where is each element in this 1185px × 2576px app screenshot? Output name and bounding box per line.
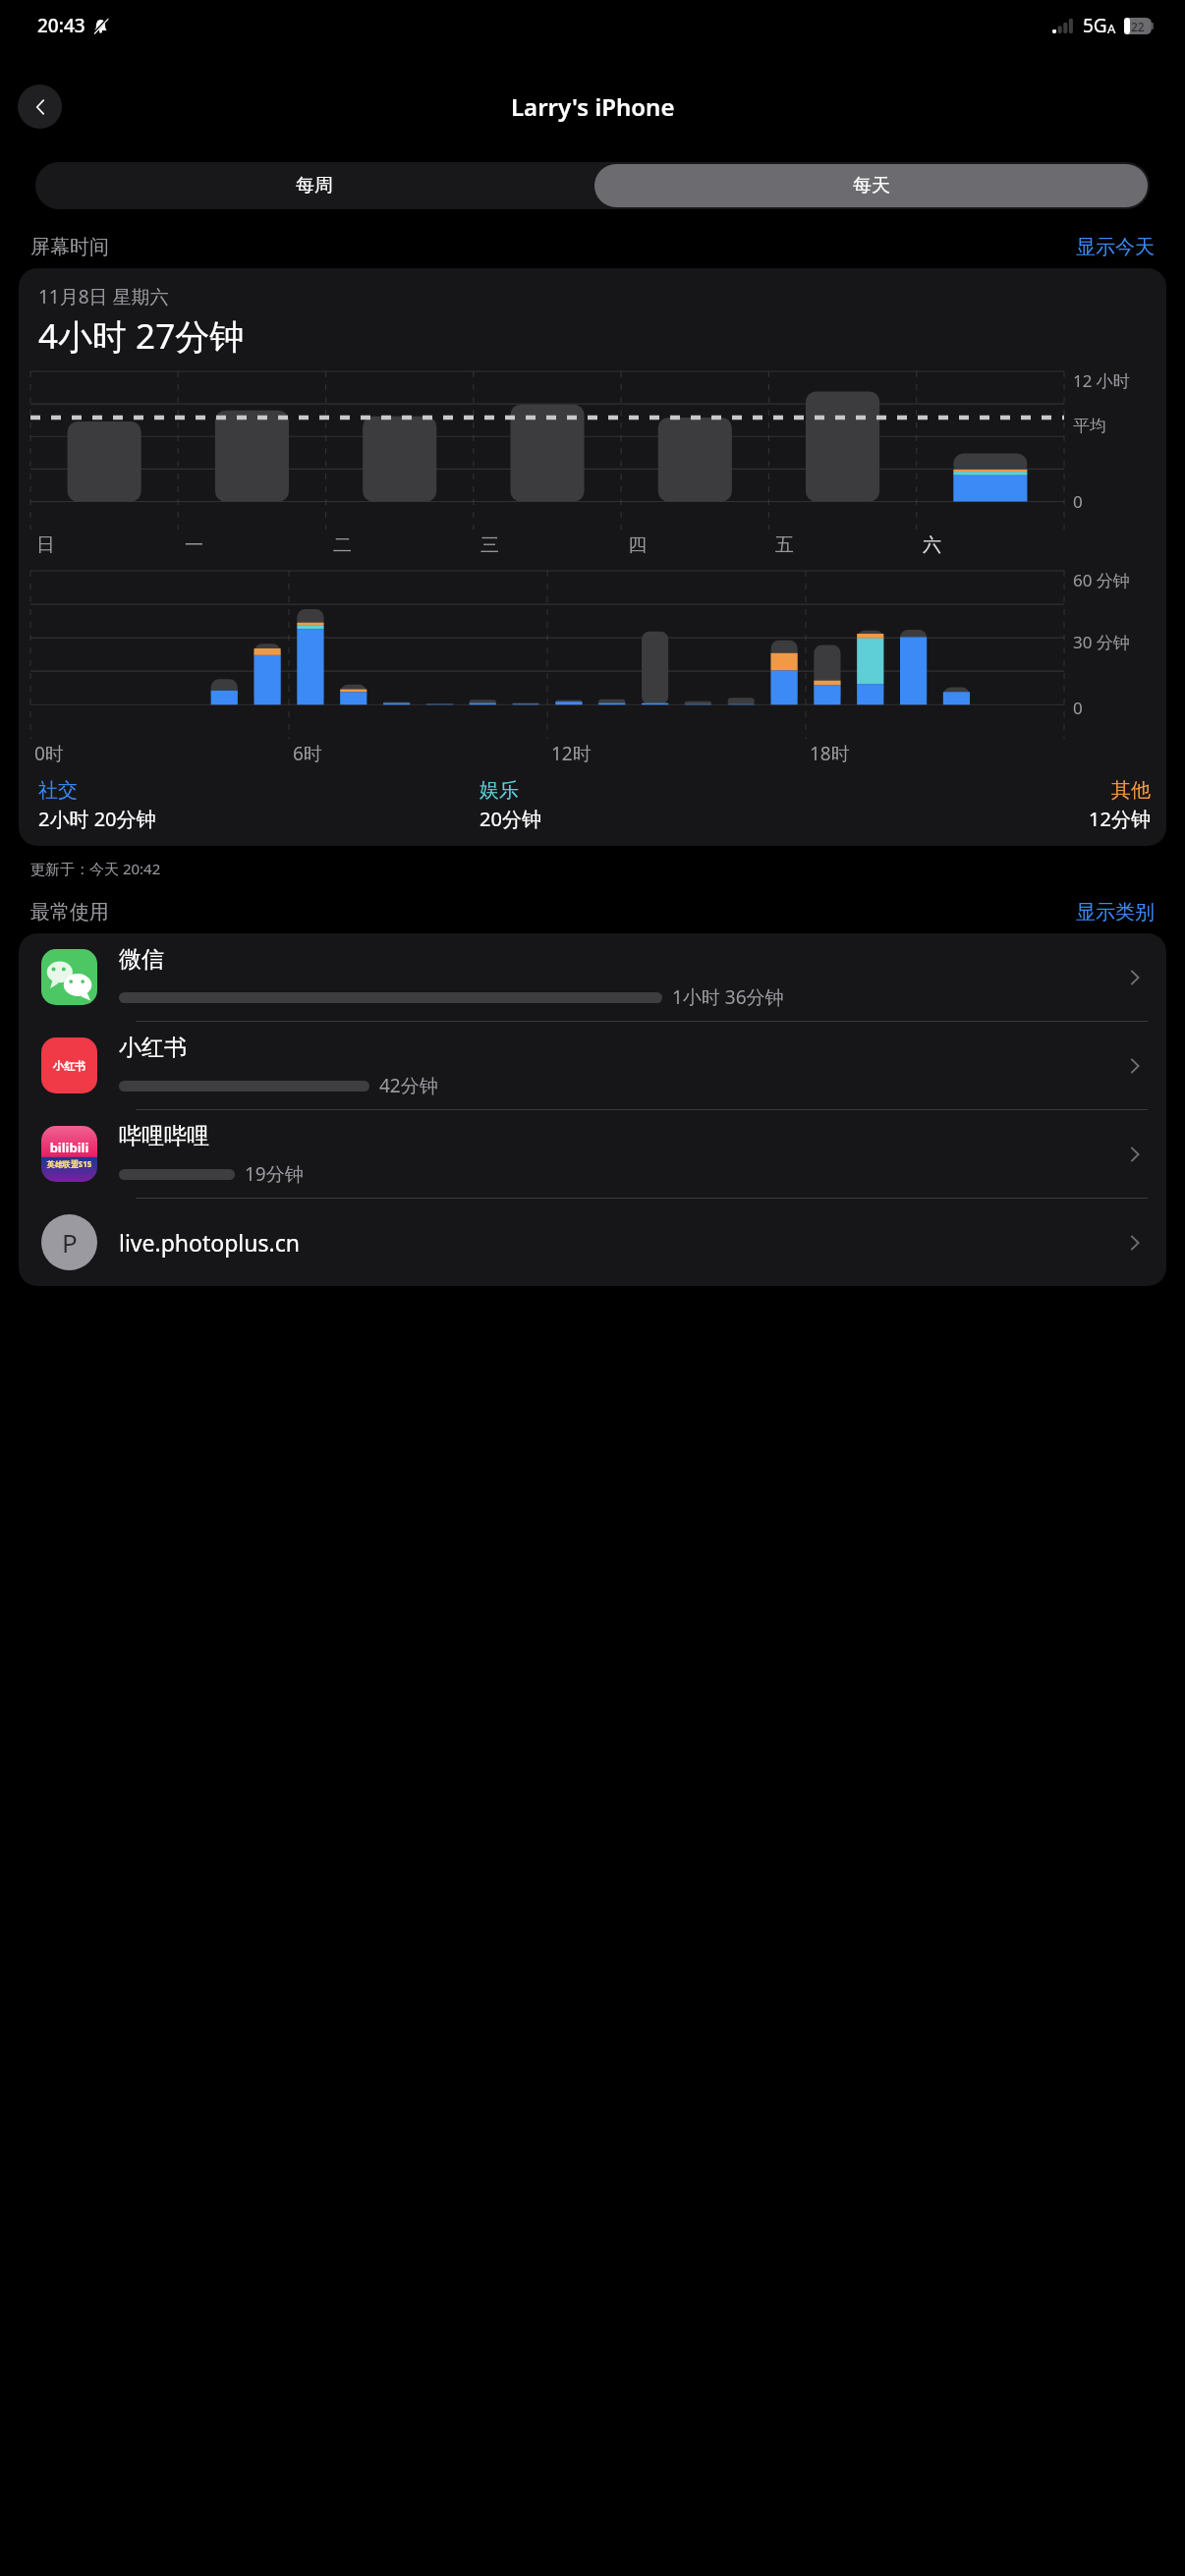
staticText: 日 — [36, 533, 55, 557]
staticText: 娱乐 — [480, 778, 519, 803]
staticText: 屏幕时间 — [30, 235, 109, 259]
staticText: 12时 — [551, 741, 592, 766]
staticText: 微信 — [119, 945, 164, 974]
staticText: 20分钟 — [480, 806, 541, 832]
staticText: 显示今天 — [1076, 235, 1155, 259]
staticText: 英雄联盟S15 — [41, 1158, 97, 1169]
staticText: 20:43 — [37, 13, 85, 38]
staticText: 其他 — [1111, 778, 1151, 803]
staticText: live.photoplus.cn — [119, 1227, 300, 1258]
staticText: 六 — [923, 533, 941, 557]
button[interactable]: 显示今天 — [1076, 235, 1155, 259]
staticText: 四 — [628, 533, 647, 557]
staticText: 0 — [1073, 697, 1083, 719]
staticText: 显示类别 — [1076, 900, 1155, 924]
staticText: 小红书 — [53, 1059, 85, 1073]
staticText: 12分钟 — [1089, 806, 1151, 832]
staticText: 哔哩哔哩 — [119, 1122, 209, 1150]
staticText: 三 — [480, 533, 499, 557]
button[interactable]: bilibili — [19, 1110, 1166, 1198]
staticText: 60 分钟 — [1073, 569, 1130, 591]
staticText: 五 — [775, 533, 794, 557]
button[interactable]: 微信 — [19, 933, 1166, 1021]
button[interactable]: 11月8日 星期六 — [19, 268, 1166, 846]
staticText: 1小时 36分钟 — [672, 984, 784, 1010]
staticText: 19分钟 — [245, 1161, 304, 1187]
staticText: 每天 — [853, 174, 890, 197]
staticText: P — [62, 1225, 78, 1260]
staticText: 二 — [333, 533, 352, 557]
staticText: 30 分钟 — [1073, 631, 1130, 653]
button[interactable]: 每天 — [594, 164, 1148, 207]
staticText: Larry's iPhone — [511, 90, 675, 123]
staticText: 最常使用 — [30, 900, 109, 924]
staticText: 5G — [1083, 13, 1107, 38]
staticText: 12 小时 — [1073, 369, 1130, 392]
staticText: 4小时 27分钟 — [38, 312, 245, 360]
staticText: 平均 — [1073, 416, 1106, 436]
staticText: 更新于：今天 20:42 — [30, 859, 161, 878]
staticText: 6时 — [293, 741, 322, 766]
staticText: 11月8日 星期六 — [38, 284, 169, 309]
staticText: 社交 — [38, 778, 78, 803]
staticText: bilibili — [41, 1139, 97, 1156]
button[interactable]: Back — [18, 84, 62, 129]
staticText: 18时 — [810, 741, 850, 766]
staticText: A — [1107, 20, 1116, 37]
button[interactable]: P — [19, 1199, 1166, 1286]
staticText: 2小时 20分钟 — [38, 806, 156, 832]
staticText: 小红书 — [119, 1034, 187, 1062]
staticText: 0时 — [34, 741, 64, 766]
staticText: 22 — [1131, 19, 1145, 34]
staticText: 每周 — [296, 174, 333, 197]
staticText: 一 — [185, 533, 203, 557]
button[interactable]: 小红书 — [19, 1022, 1166, 1109]
staticText: 0 — [1073, 490, 1083, 513]
button[interactable]: 显示类别 — [1076, 900, 1155, 924]
button[interactable]: 每周 — [35, 162, 592, 209]
staticText: 42分钟 — [379, 1073, 438, 1098]
